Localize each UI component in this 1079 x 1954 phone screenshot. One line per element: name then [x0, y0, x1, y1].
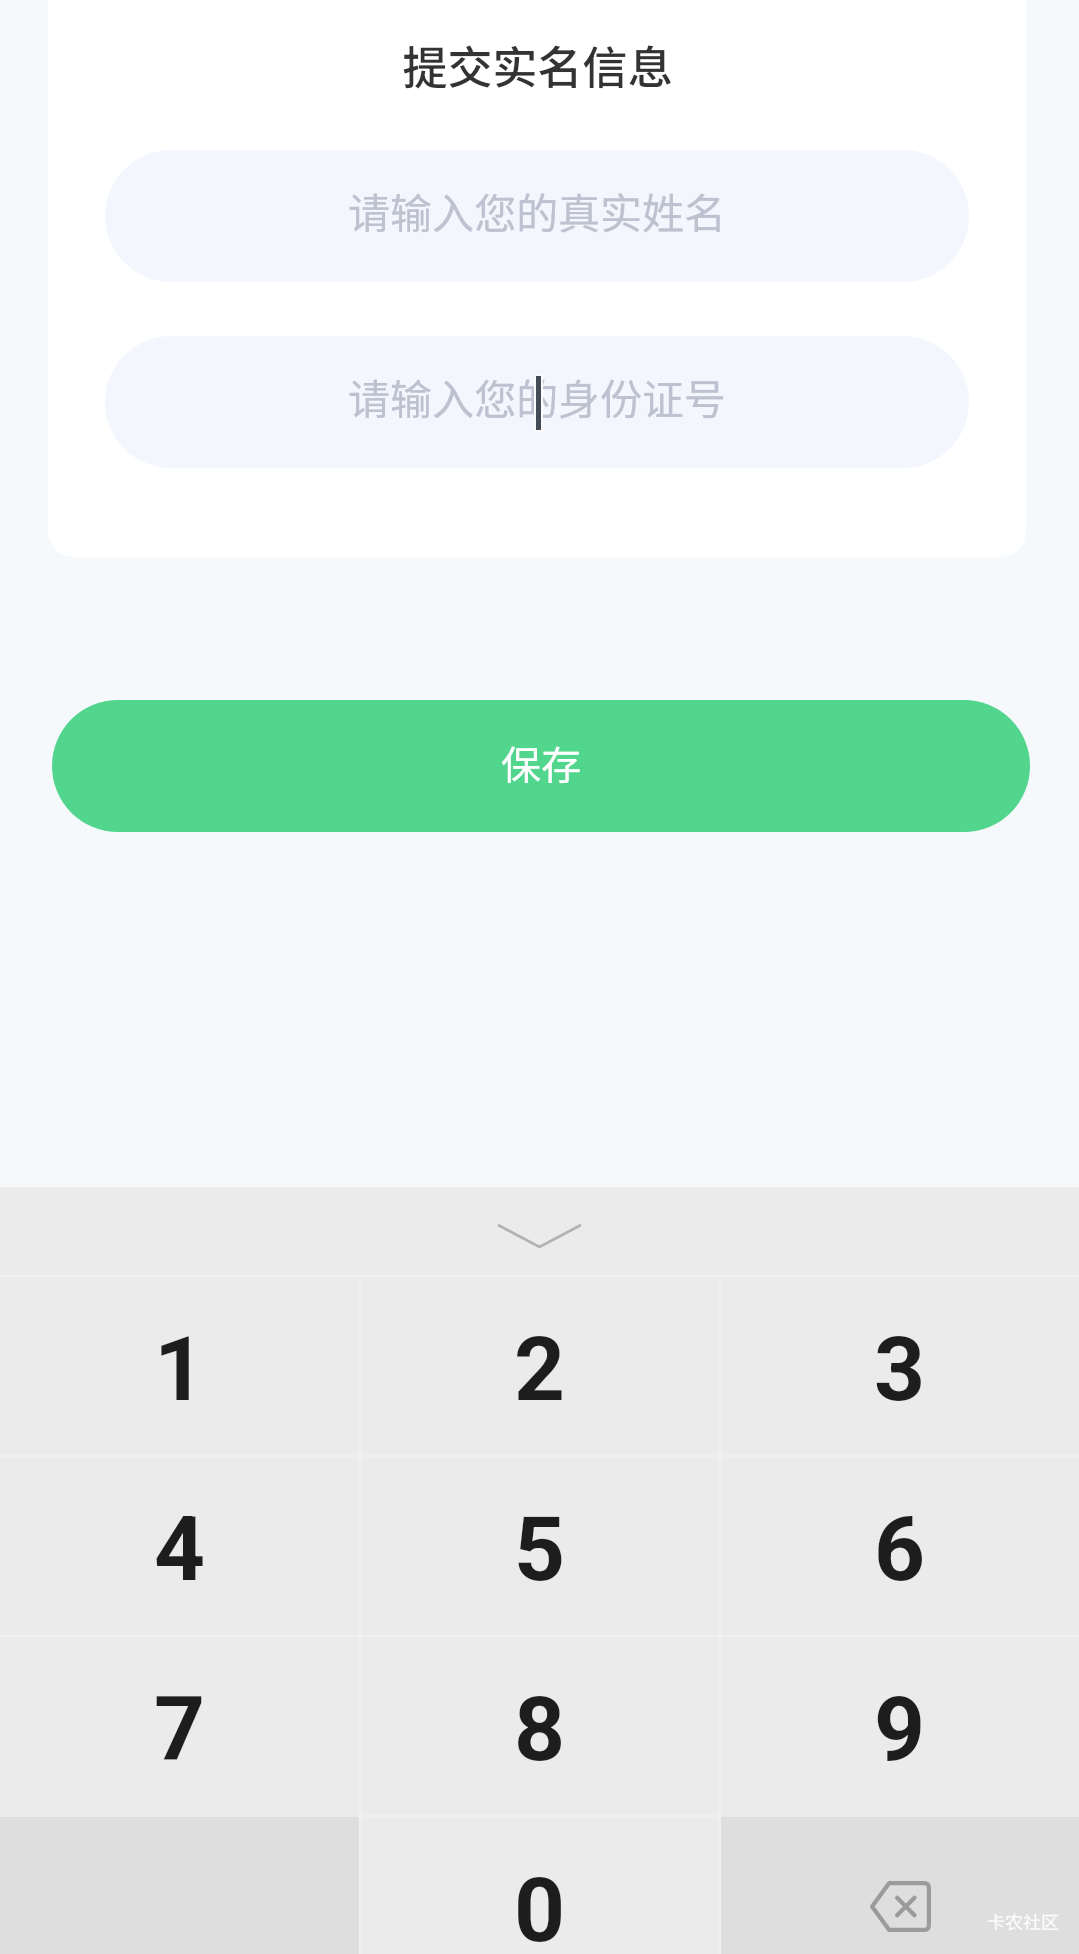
staticText: 2: [514, 1317, 566, 1421]
staticText: 8: [514, 1677, 566, 1781]
staticText: 提交实名信息: [402, 32, 673, 97]
staticText: 1: [154, 1317, 206, 1421]
button[interactable]: 保存: [52, 700, 1030, 832]
button[interactable]: 8: [361, 1637, 719, 1815]
button[interactable]: 请输入您的身份证号: [105, 336, 969, 468]
button[interactable]: 9: [721, 1637, 1079, 1815]
button[interactable]: 2: [361, 1277, 719, 1455]
staticText: 请输入您的身份证号: [348, 366, 727, 427]
staticText: 0: [514, 1858, 566, 1954]
button[interactable]: Backspace: [721, 1817, 1079, 1954]
button[interactable]: 3: [721, 1277, 1079, 1455]
button[interactable]: 7: [0, 1637, 359, 1815]
staticText: 4: [154, 1497, 206, 1601]
button[interactable]: 5: [361, 1457, 719, 1635]
staticText: 5: [514, 1497, 566, 1601]
staticText: 9: [874, 1677, 926, 1781]
staticText: 6: [874, 1497, 926, 1601]
staticText: 保存: [501, 734, 581, 792]
button[interactable]: 请输入您的真实姓名: [105, 150, 969, 282]
button[interactable]: 1: [0, 1277, 359, 1455]
staticText: 请输入您的真实姓名: [348, 180, 727, 241]
button[interactable]: 6: [721, 1457, 1079, 1635]
staticText: 3: [874, 1317, 926, 1421]
staticText: 7: [154, 1677, 206, 1781]
staticText: 卡农社区: [987, 1908, 1059, 1934]
button[interactable]: 0: [361, 1817, 719, 1954]
button[interactable]: 4: [0, 1457, 359, 1635]
